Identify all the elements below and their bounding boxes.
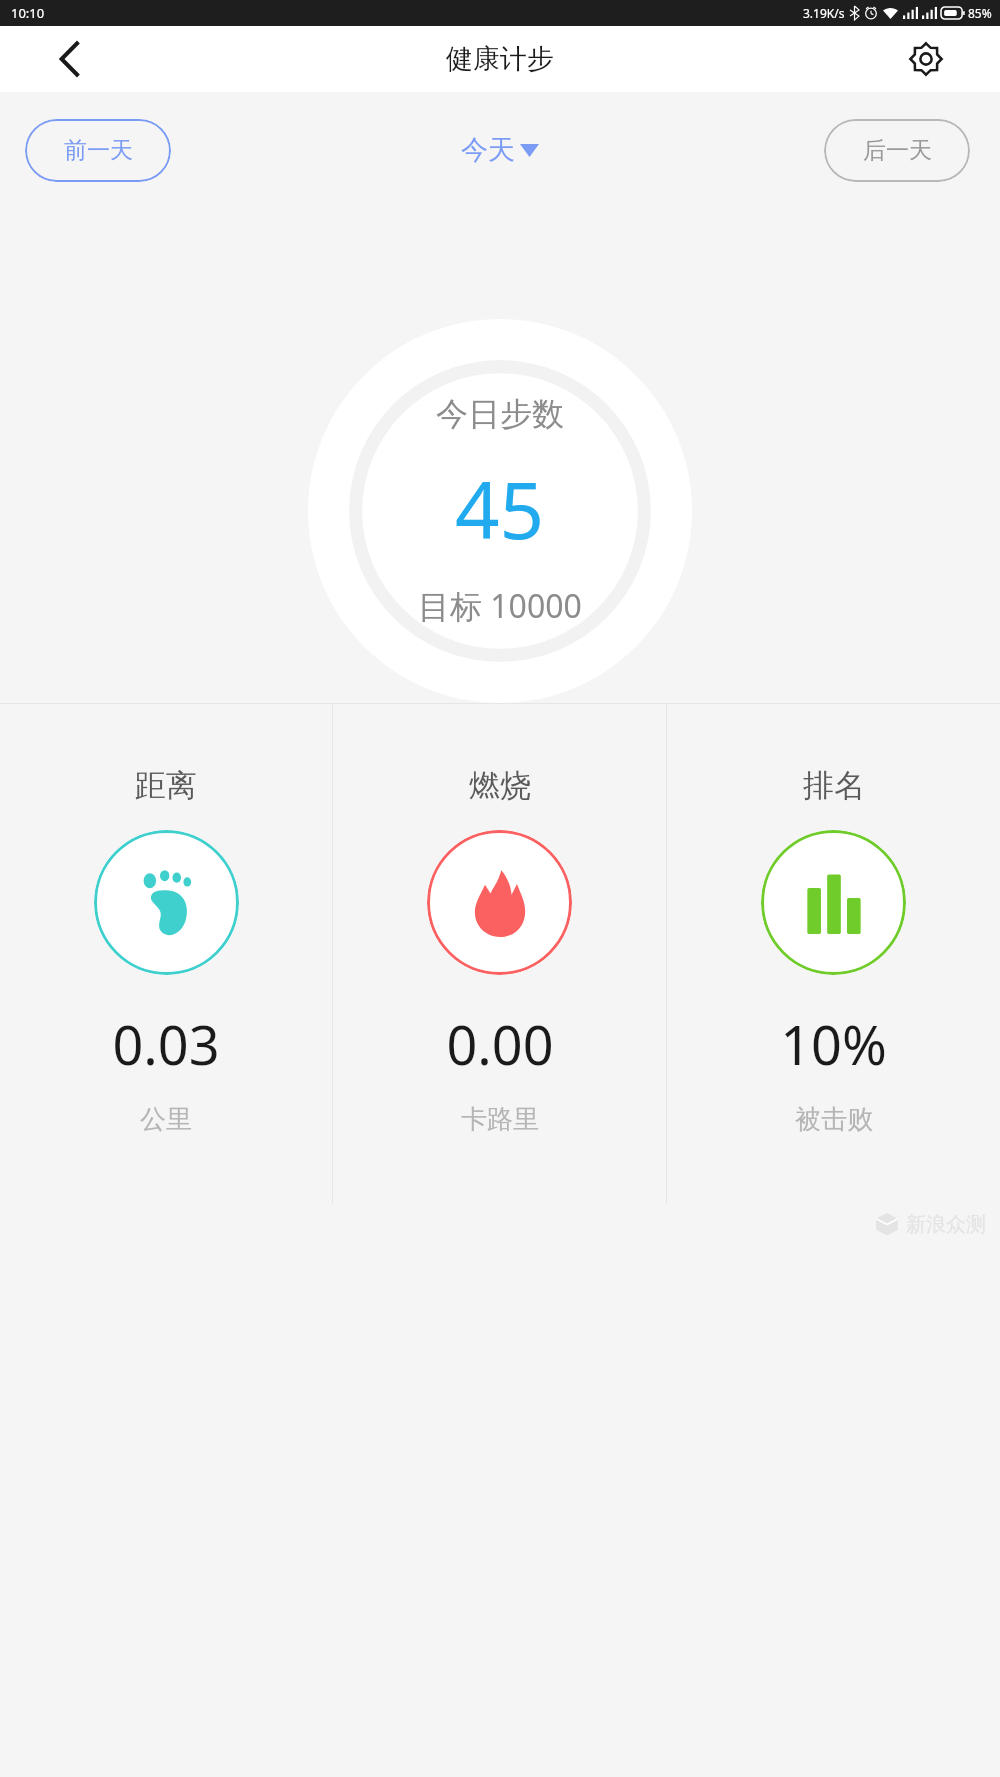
staticText: 前一天 bbox=[64, 136, 133, 165]
staticText: 0.00 bbox=[446, 1007, 554, 1081]
staticText: 燃烧 bbox=[469, 766, 531, 805]
staticText: 距离 bbox=[135, 766, 197, 805]
staticText: 卡路里 bbox=[461, 1103, 539, 1136]
button[interactable]: 后一天 bbox=[824, 119, 970, 182]
button[interactable]: Settings bbox=[903, 36, 949, 82]
button[interactable]: 距离 bbox=[0, 704, 332, 1204]
staticText: 今天 bbox=[461, 133, 515, 167]
staticText: 目标 10000 bbox=[418, 584, 582, 628]
staticText: 85% bbox=[968, 5, 992, 21]
button[interactable]: 今天 bbox=[451, 127, 549, 173]
staticText: 后一天 bbox=[863, 136, 932, 165]
staticText: 新浪众测 bbox=[906, 1212, 986, 1237]
staticText: 0.03 bbox=[112, 1007, 220, 1081]
button[interactable]: 排名 bbox=[667, 704, 1000, 1204]
staticText: 45 bbox=[455, 456, 545, 562]
button[interactable]: Back bbox=[48, 37, 92, 81]
staticText: 健康计步 bbox=[446, 42, 554, 76]
button[interactable]: 今日步数 bbox=[222, 319, 778, 703]
staticText: 排名 bbox=[803, 766, 865, 805]
staticText: 被击败 bbox=[795, 1103, 873, 1136]
staticText: 公里 bbox=[140, 1103, 192, 1136]
staticText: 今日步数 bbox=[436, 394, 564, 434]
staticText: 10:10 bbox=[11, 4, 45, 22]
staticText: 10% bbox=[780, 1007, 887, 1081]
staticText: 3.19K/s bbox=[803, 5, 845, 21]
button[interactable]: 燃烧 bbox=[333, 704, 666, 1204]
button[interactable]: 前一天 bbox=[25, 119, 171, 182]
